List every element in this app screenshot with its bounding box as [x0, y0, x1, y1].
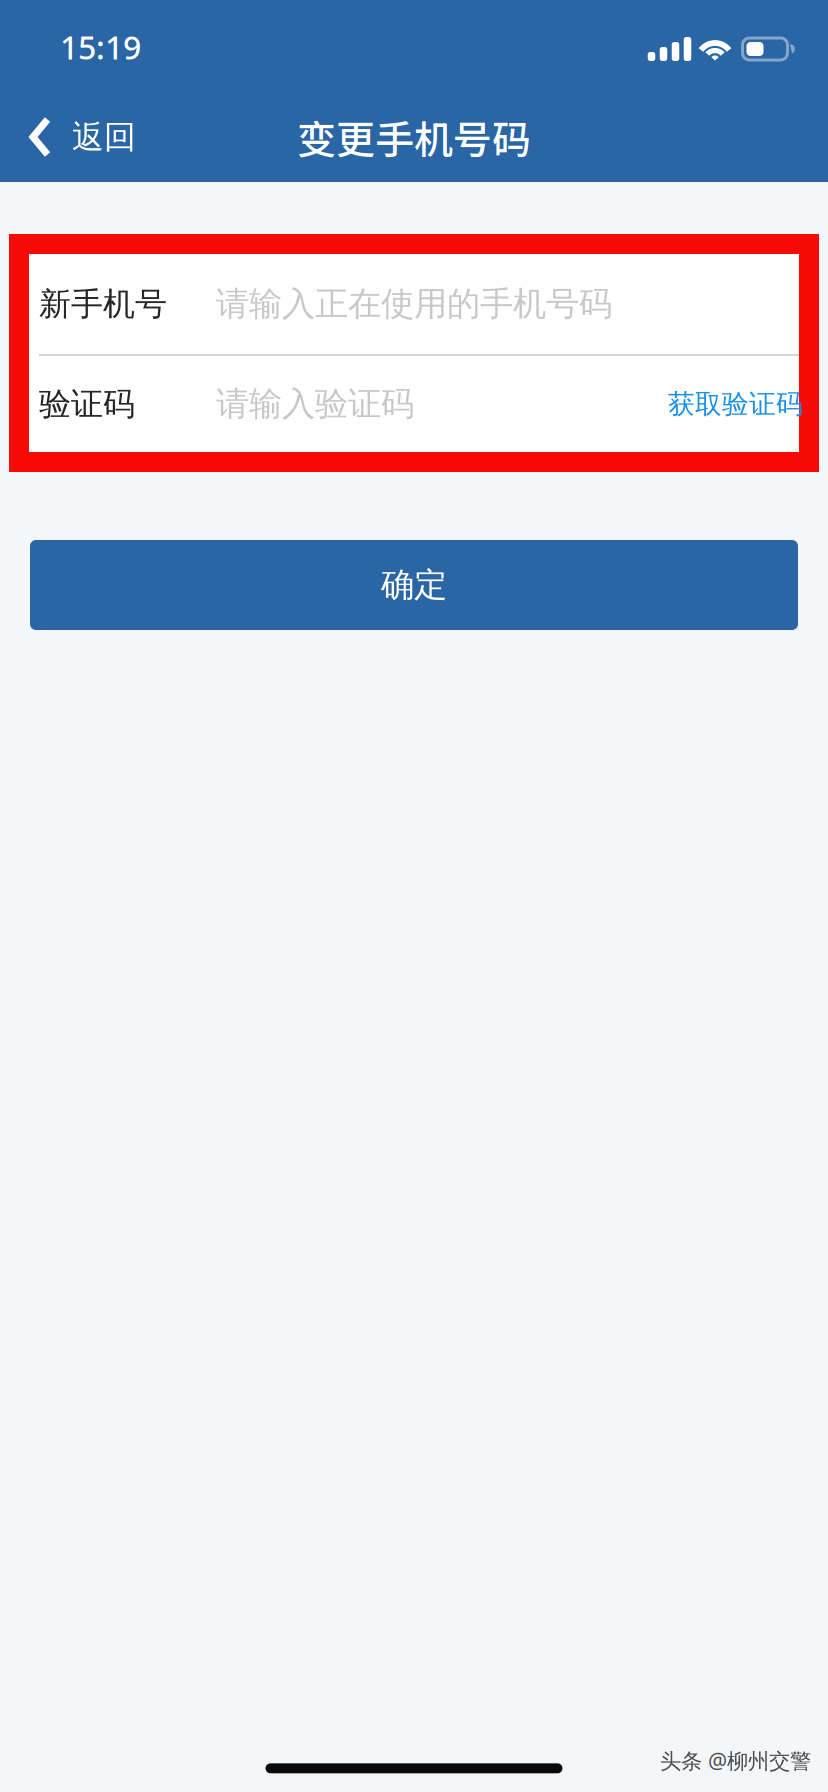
staticText: 请输入正在使用的手机号码 [216, 283, 612, 324]
staticText: 返回 [72, 117, 136, 157]
staticText: 15:19 [60, 26, 141, 68]
staticText: 新手机号 [39, 284, 167, 324]
button[interactable]: 确定 [30, 540, 798, 630]
staticText: 验证码 [39, 384, 135, 424]
staticText: 获取验证码 [668, 388, 803, 420]
staticText: 请输入验证码 [216, 383, 414, 424]
staticText: 变更手机号码 [297, 109, 531, 165]
button[interactable]: 返回 [0, 92, 152, 182]
staticText: 确定 [381, 564, 447, 605]
button[interactable]: 获取验证码 [668, 388, 799, 420]
staticText: 头条 @柳州交警 [660, 1746, 811, 1775]
